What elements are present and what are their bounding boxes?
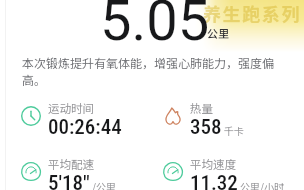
button[interactable]: 热量 <box>163 100 283 136</box>
staticText: 5'18" <box>48 171 90 190</box>
staticText: /公里 <box>92 179 116 190</box>
button[interactable]: 运动时间 <box>21 100 141 136</box>
staticText: 热量 <box>190 100 213 117</box>
staticText: 本次锻炼提升有氧体能，增强心肺能力，强度偏高。 <box>22 54 280 88</box>
staticText: 平均速度 <box>190 156 236 173</box>
button[interactable]: 平均配速 <box>21 156 141 190</box>
staticText: 平均配速 <box>48 156 94 173</box>
staticText: 养生跑系列 <box>203 0 301 26</box>
button[interactable]: 平均速度 <box>163 156 283 190</box>
staticText: 358 <box>190 115 222 140</box>
staticText: 运动时间 <box>48 100 94 117</box>
staticText: 公里 <box>207 25 229 41</box>
staticText: 00:26:44 <box>48 115 122 140</box>
staticText: 5.05 <box>100 0 210 54</box>
staticText: 11.32 <box>190 171 238 190</box>
staticText: 千卡 <box>224 123 244 137</box>
staticText: 公里/小时 <box>240 179 284 190</box>
